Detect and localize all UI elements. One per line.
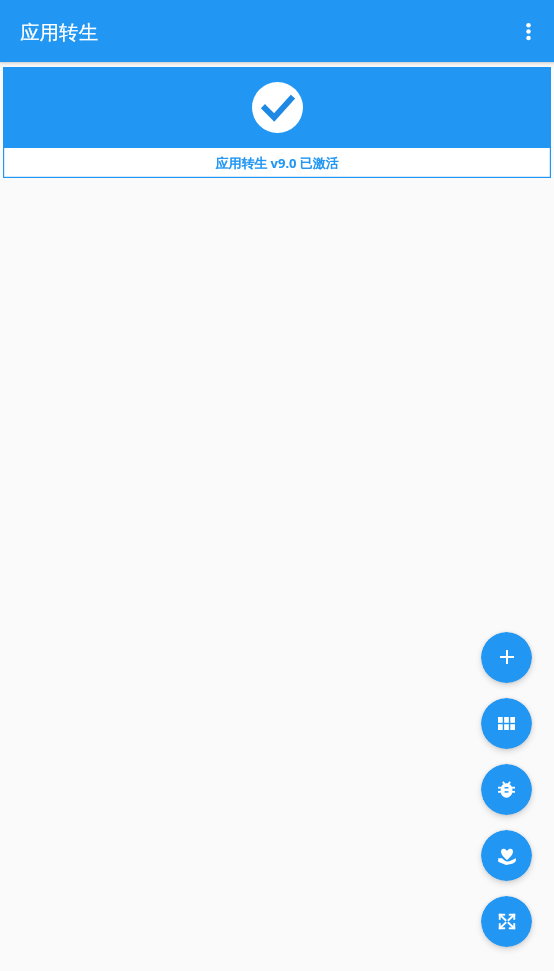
button[interactable]: Expand [481,896,532,947]
button[interactable]: Apps [481,698,532,749]
button[interactable]: Bug report [481,764,532,815]
staticText: 应用转生 [20,20,98,45]
button[interactable]: 应用转生 v9.0 已激活 [3,67,551,178]
button[interactable]: Donate [481,830,532,881]
button[interactable]: More options [506,9,550,53]
staticText: 应用转生 v9.0 已激活 [215,154,339,172]
button[interactable]: Add [481,632,532,683]
